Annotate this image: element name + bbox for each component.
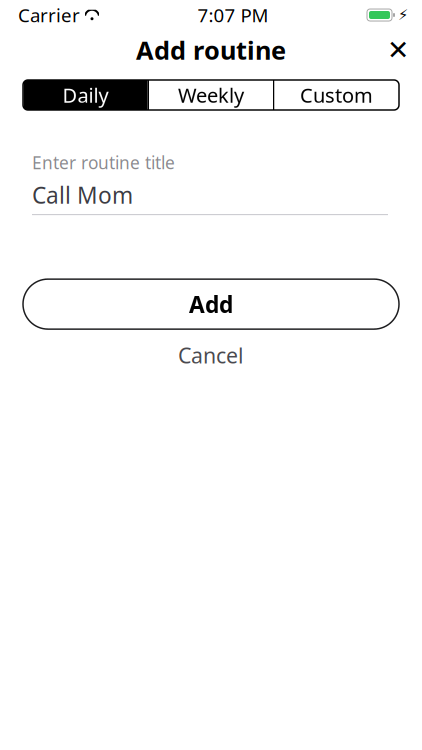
staticText: Add: [189, 289, 233, 319]
staticText: Daily: [62, 82, 108, 108]
button[interactable]: Cancel: [111, 340, 311, 370]
button[interactable]: Custom: [274, 80, 398, 110]
staticText: Carrier: [18, 3, 80, 27]
staticText: ⚡︎: [398, 7, 408, 23]
button[interactable]: Weekly: [149, 80, 273, 110]
staticText: Cancel: [178, 341, 244, 369]
button[interactable]: Close: [376, 28, 420, 72]
staticText: Custom: [300, 82, 373, 108]
staticText: 7:07 PM: [197, 3, 268, 27]
staticText: Add routine: [136, 33, 286, 67]
button[interactable]: Daily: [23, 80, 147, 110]
staticText: ✕: [387, 35, 409, 65]
button[interactable]: Add: [23, 279, 399, 329]
staticText: Weekly: [178, 82, 244, 108]
staticText: Enter routine title: [32, 151, 175, 174]
staticText: Call Mom: [32, 180, 133, 210]
